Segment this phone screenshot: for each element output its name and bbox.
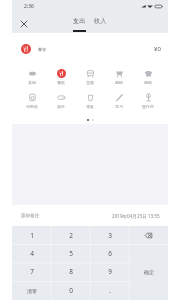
staticText: 服饰 [144, 80, 152, 85]
staticText: 收入 [94, 17, 107, 25]
staticText: 3 [108, 231, 112, 240]
staticText: 其他 [28, 80, 36, 85]
button[interactable]: 1 [12, 226, 51, 244]
staticText: 6 [108, 249, 112, 258]
button[interactable]: 零食 [75, 88, 104, 112]
button[interactable]: 8 [51, 262, 90, 281]
button[interactable]: Backspace [129, 226, 168, 244]
staticText: 2 [69, 231, 73, 240]
button[interactable]: 9 [90, 262, 129, 281]
staticText: 餐饮 [57, 80, 65, 85]
staticText: 1 [30, 231, 34, 240]
staticText: 2:36 [24, 3, 34, 10]
staticText: 支出 [73, 17, 86, 25]
staticText: 5 [69, 249, 73, 258]
button[interactable]: 购物 [104, 64, 133, 88]
button[interactable]: 添加备注 [21, 213, 40, 219]
button[interactable]: 支出 [69, 17, 89, 33]
staticText: 4 [30, 249, 34, 258]
staticText: 餐饮 [38, 47, 47, 52]
button[interactable]: 4 [12, 244, 51, 262]
button[interactable]: 2 [51, 226, 90, 244]
button[interactable]: 0 [51, 281, 90, 300]
staticText: 0 [69, 286, 73, 295]
button[interactable]: 娱乐 [46, 88, 75, 112]
staticText: . [109, 286, 111, 295]
staticText: 清零 [27, 288, 37, 294]
staticText: 8 [69, 267, 73, 276]
button[interactable]: 服饰 [133, 64, 162, 88]
button[interactable]: 3 [90, 226, 129, 244]
staticText: 7 [30, 267, 34, 276]
staticText: ¥0 [154, 45, 161, 53]
staticText: 确定 [144, 269, 154, 275]
button[interactable]: 5 [51, 244, 90, 262]
button[interactable]: 餐饮 [46, 64, 75, 88]
staticText: 学习 [115, 104, 123, 109]
staticText: 医疗药 [142, 104, 154, 109]
button[interactable]: 确定 [129, 244, 168, 300]
staticText: 娱乐 [57, 104, 65, 109]
button[interactable]: 6 [90, 244, 129, 262]
button[interactable]: 收入 [90, 17, 110, 29]
button[interactable]: Close [16, 16, 32, 32]
button[interactable]: 学习 [104, 88, 133, 112]
button[interactable]: 2019年04月23日 13:55 [112, 213, 160, 219]
button[interactable]: 交通 [75, 64, 104, 88]
button[interactable]: 医疗药 [133, 88, 162, 112]
staticText: 交通 [86, 80, 94, 85]
button[interactable]: 其他 [18, 64, 46, 88]
button[interactable]: 清零 [12, 281, 51, 300]
staticText: 购物 [115, 80, 123, 85]
button[interactable]: 日用品 [18, 88, 46, 112]
staticText: 日用品 [26, 104, 38, 109]
button[interactable]: . [90, 281, 129, 300]
button[interactable]: 7 [12, 262, 51, 281]
staticText: 9 [108, 267, 112, 276]
staticText: 零食 [86, 104, 94, 109]
